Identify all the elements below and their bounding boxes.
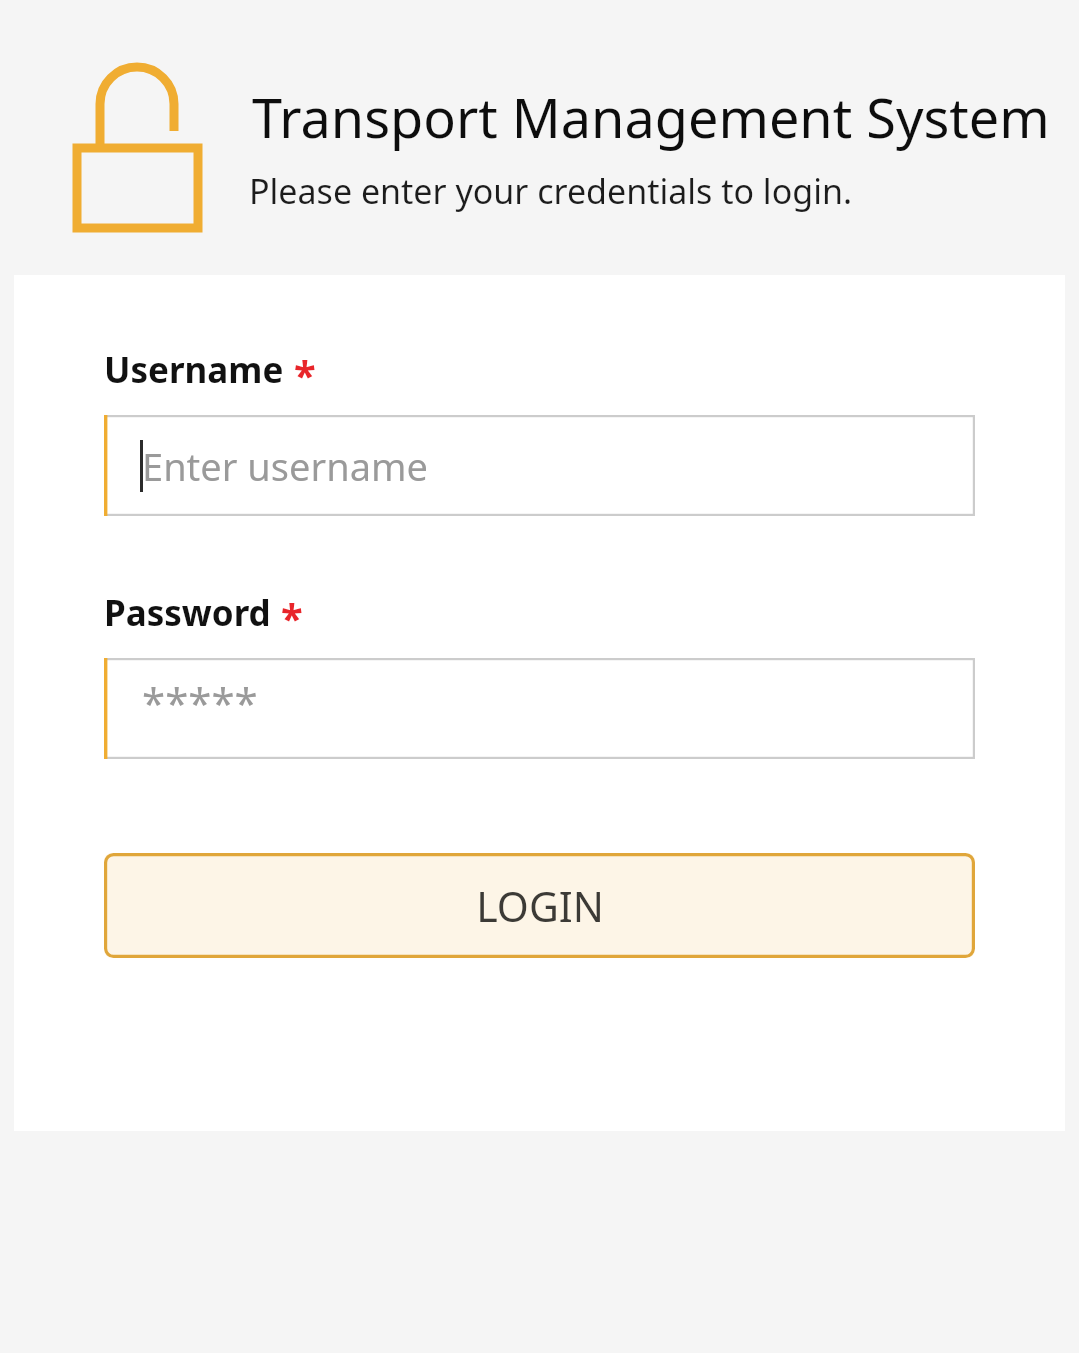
- other: Unlocked padlock: [70, 58, 206, 238]
- staticText: Please enter your credentials to login.: [249, 168, 853, 214]
- staticText: LOGIN: [476, 878, 604, 934]
- staticText: *: [281, 590, 303, 644]
- staticText: Enter username: [142, 440, 428, 492]
- staticText: Username: [104, 346, 284, 394]
- staticText: Password: [104, 589, 271, 637]
- staticText: Transport Management System: [252, 80, 1050, 154]
- staticText: *****: [142, 674, 258, 731]
- staticText: *: [294, 347, 316, 401]
- button[interactable]: Username input field: [104, 415, 975, 516]
- button[interactable]: LOGIN: [104, 853, 975, 958]
- button[interactable]: Password input field: [104, 658, 975, 759]
